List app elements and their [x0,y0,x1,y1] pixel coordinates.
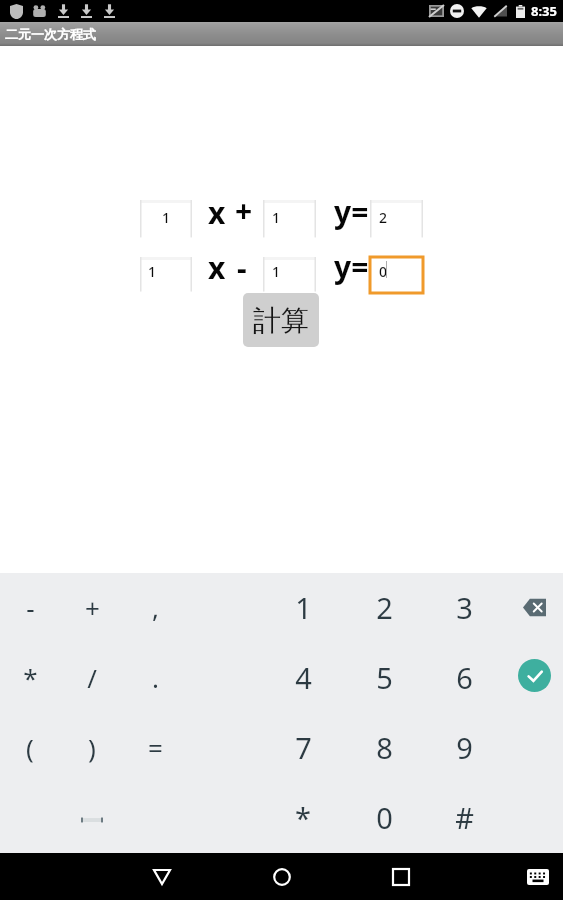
button[interactable]: 1 [263,257,316,293]
button[interactable]: 1 [273,583,333,631]
button[interactable]: / [62,653,122,701]
staticText: - [26,590,35,625]
staticText: + [85,590,100,625]
staticText: , [152,590,159,625]
staticText: 8 [376,728,393,767]
button[interactable]: Recents [377,853,425,900]
button[interactable]: 8 [354,723,414,771]
staticText: y= [334,191,369,232]
button[interactable]: 0 [370,257,423,293]
button[interactable]: ( [0,723,60,771]
staticText: = [148,730,163,765]
staticText: 8:35 [531,2,557,20]
staticText: / [87,660,97,695]
button[interactable]: 0 [354,793,414,841]
button[interactable]: 4 [273,653,333,701]
staticText: 1 [272,208,281,227]
button[interactable]: 5 [354,653,414,701]
button[interactable]: 3 [434,583,494,631]
button[interactable]: = [125,723,185,771]
staticText: 7 [295,728,312,767]
button[interactable]: Backspace [506,583,562,631]
button[interactable]: 6 [434,653,494,701]
button[interactable]: Space [62,795,122,843]
button[interactable]: * [273,793,333,841]
staticText: 2 [376,588,393,627]
staticText: . [152,660,159,695]
staticText: x [208,247,226,288]
button[interactable]: + [62,583,122,631]
staticText: 計算 [253,303,309,338]
staticText: + [235,190,253,231]
staticText: x [208,192,226,233]
staticText: ) [88,730,96,765]
staticText: ( [26,730,34,765]
button[interactable]: 1 [140,257,192,293]
staticText: * [295,798,311,837]
staticText: 4 [295,658,312,697]
staticText: 1 [295,588,312,627]
staticText: 6 [456,658,473,697]
button[interactable]: 計算 [243,293,319,347]
staticText: 1 [148,262,157,281]
button[interactable]: 2 [370,200,423,239]
staticText: # [455,798,474,837]
button[interactable]: Home [258,853,306,900]
button[interactable]: 9 [434,723,494,771]
staticText: 0 [379,262,388,281]
staticText: 3 [456,588,473,627]
button[interactable]: 7 [273,723,333,771]
staticText: 5 [376,658,393,697]
staticText: 0 [376,798,393,837]
staticText: * [23,660,38,695]
staticText: 1 [272,262,281,281]
button[interactable]: Back [138,853,186,900]
button[interactable]: 1 [263,200,316,239]
staticText: 9 [456,728,473,767]
button[interactable]: # [434,793,494,841]
button[interactable]: , [125,583,185,631]
button[interactable]: ) [62,723,122,771]
button[interactable]: Done [506,651,562,699]
staticText: 2 [379,208,388,227]
button[interactable]: . [125,653,185,701]
button[interactable]: - [0,583,60,631]
button[interactable]: Switch keyboard [521,860,555,894]
button[interactable]: * [0,653,60,701]
button[interactable]: 2 [354,583,414,631]
staticText: 二元一次方程式 [5,26,96,42]
staticText: 1 [162,208,171,227]
button[interactable]: 1 [140,200,192,239]
staticText: - [237,247,247,288]
staticText: y= [334,246,369,287]
